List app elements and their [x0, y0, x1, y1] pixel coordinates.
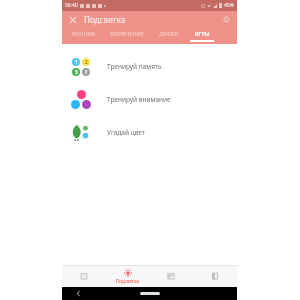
button[interactable]: КИПЯЧЕНИЕ	[103, 28, 151, 44]
staticText: НОЧНИК	[71, 30, 96, 37]
staticText: Угадай цвет	[107, 128, 145, 137]
staticText: 45%	[224, 2, 234, 9]
button[interactable]: Тренируй внимание	[62, 83, 237, 116]
button[interactable]: Close	[66, 13, 79, 26]
staticText: 2	[85, 59, 88, 65]
staticText: 06:40	[65, 2, 78, 9]
button[interactable]: ДИСКО	[153, 28, 184, 44]
button[interactable]: Book	[193, 265, 237, 287]
button[interactable]: 1	[62, 50, 237, 83]
button[interactable]: Timer	[62, 265, 105, 287]
staticText: Подсветка	[84, 14, 126, 25]
button[interactable]: Settings	[220, 13, 233, 26]
button[interactable]: Угадай цвет	[62, 116, 237, 149]
button[interactable]: Calendar	[149, 265, 193, 287]
staticText: ?	[85, 69, 88, 75]
staticText: 3	[75, 69, 78, 75]
staticText: Тренируй память	[107, 62, 162, 71]
staticText: ДИСКО	[159, 30, 179, 37]
button[interactable]: НОЧНИК	[65, 28, 101, 44]
button[interactable]: Подсветка	[105, 265, 149, 287]
button[interactable]: ИГРЫ	[186, 28, 217, 44]
staticText: Тренируй внимание	[107, 95, 171, 104]
staticText: Подсветка	[116, 278, 139, 284]
staticText: 1	[75, 59, 78, 65]
staticText: КИПЯЧЕНИЕ	[110, 30, 144, 37]
staticText: ИГРЫ	[194, 30, 210, 37]
